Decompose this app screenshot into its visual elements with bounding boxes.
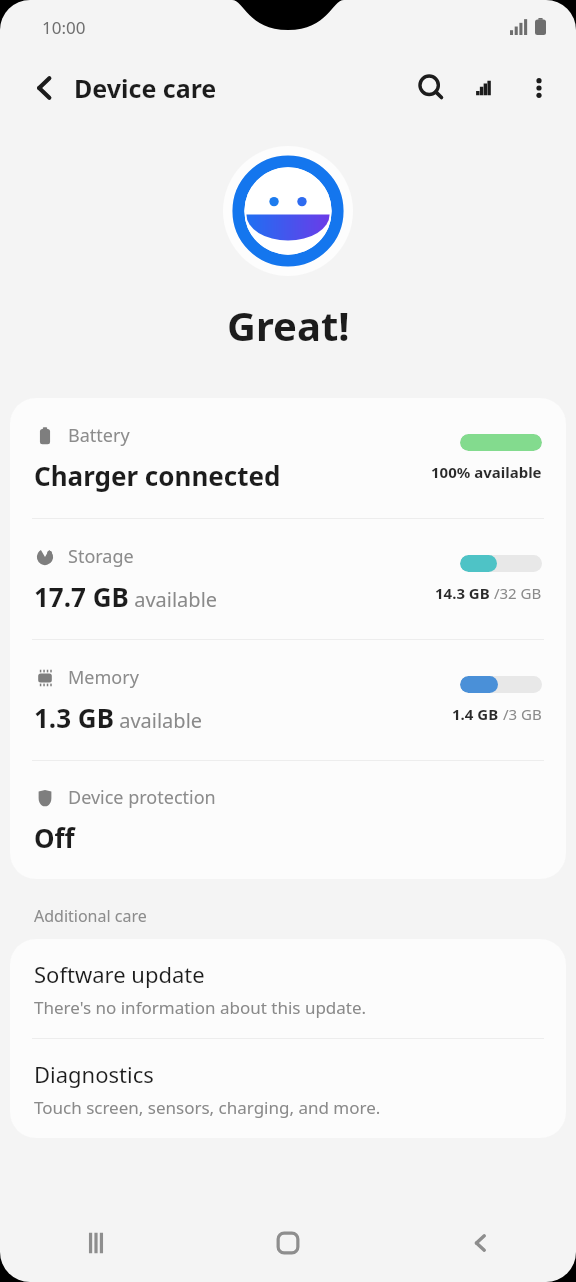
staticText: available xyxy=(129,586,218,613)
staticText: Diagnostics xyxy=(34,1059,154,1089)
button[interactable]: Diagnostics xyxy=(10,1039,566,1138)
button[interactable]: Back xyxy=(22,66,66,110)
staticText: Great! xyxy=(227,298,350,352)
button[interactable]: Search xyxy=(408,65,454,111)
staticText: 100% available xyxy=(431,462,542,482)
staticText: 1.3 GB xyxy=(34,700,114,735)
staticText: Software update xyxy=(34,959,205,989)
staticText: Battery xyxy=(68,423,130,448)
staticText: 10:00 xyxy=(42,16,86,39)
staticText: 14.3 GB xyxy=(435,583,490,603)
staticText: available xyxy=(114,707,203,734)
button[interactable]: Storage xyxy=(10,519,566,639)
staticText: Device care xyxy=(74,71,217,105)
staticText: Device protection xyxy=(68,785,216,810)
button[interactable]: Software update xyxy=(10,939,566,1038)
staticText: Memory xyxy=(68,665,139,690)
staticText: 1.4 GB xyxy=(452,704,499,724)
button[interactable]: Recents xyxy=(0,1204,192,1282)
staticText: Charger connected xyxy=(34,458,281,493)
button[interactable]: Back xyxy=(384,1204,576,1282)
button[interactable]: Memory xyxy=(10,640,566,760)
button[interactable]: More options xyxy=(516,65,562,111)
button[interactable]: Battery xyxy=(10,398,566,518)
button[interactable]: Usage statistics xyxy=(464,65,510,111)
button[interactable]: Home xyxy=(192,1204,384,1282)
staticText: Touch screen, sensors, charging, and mor… xyxy=(34,1096,381,1119)
staticText: Off xyxy=(34,820,75,855)
staticText: Additional care xyxy=(34,905,147,927)
staticText: Storage xyxy=(68,544,134,569)
staticText: There's no information about this update… xyxy=(34,996,367,1019)
staticText: /32 GB xyxy=(490,583,542,603)
staticText: 17.7 GB xyxy=(34,579,129,614)
button[interactable]: Device protection xyxy=(10,761,566,879)
staticText: /3 GB xyxy=(499,704,542,724)
